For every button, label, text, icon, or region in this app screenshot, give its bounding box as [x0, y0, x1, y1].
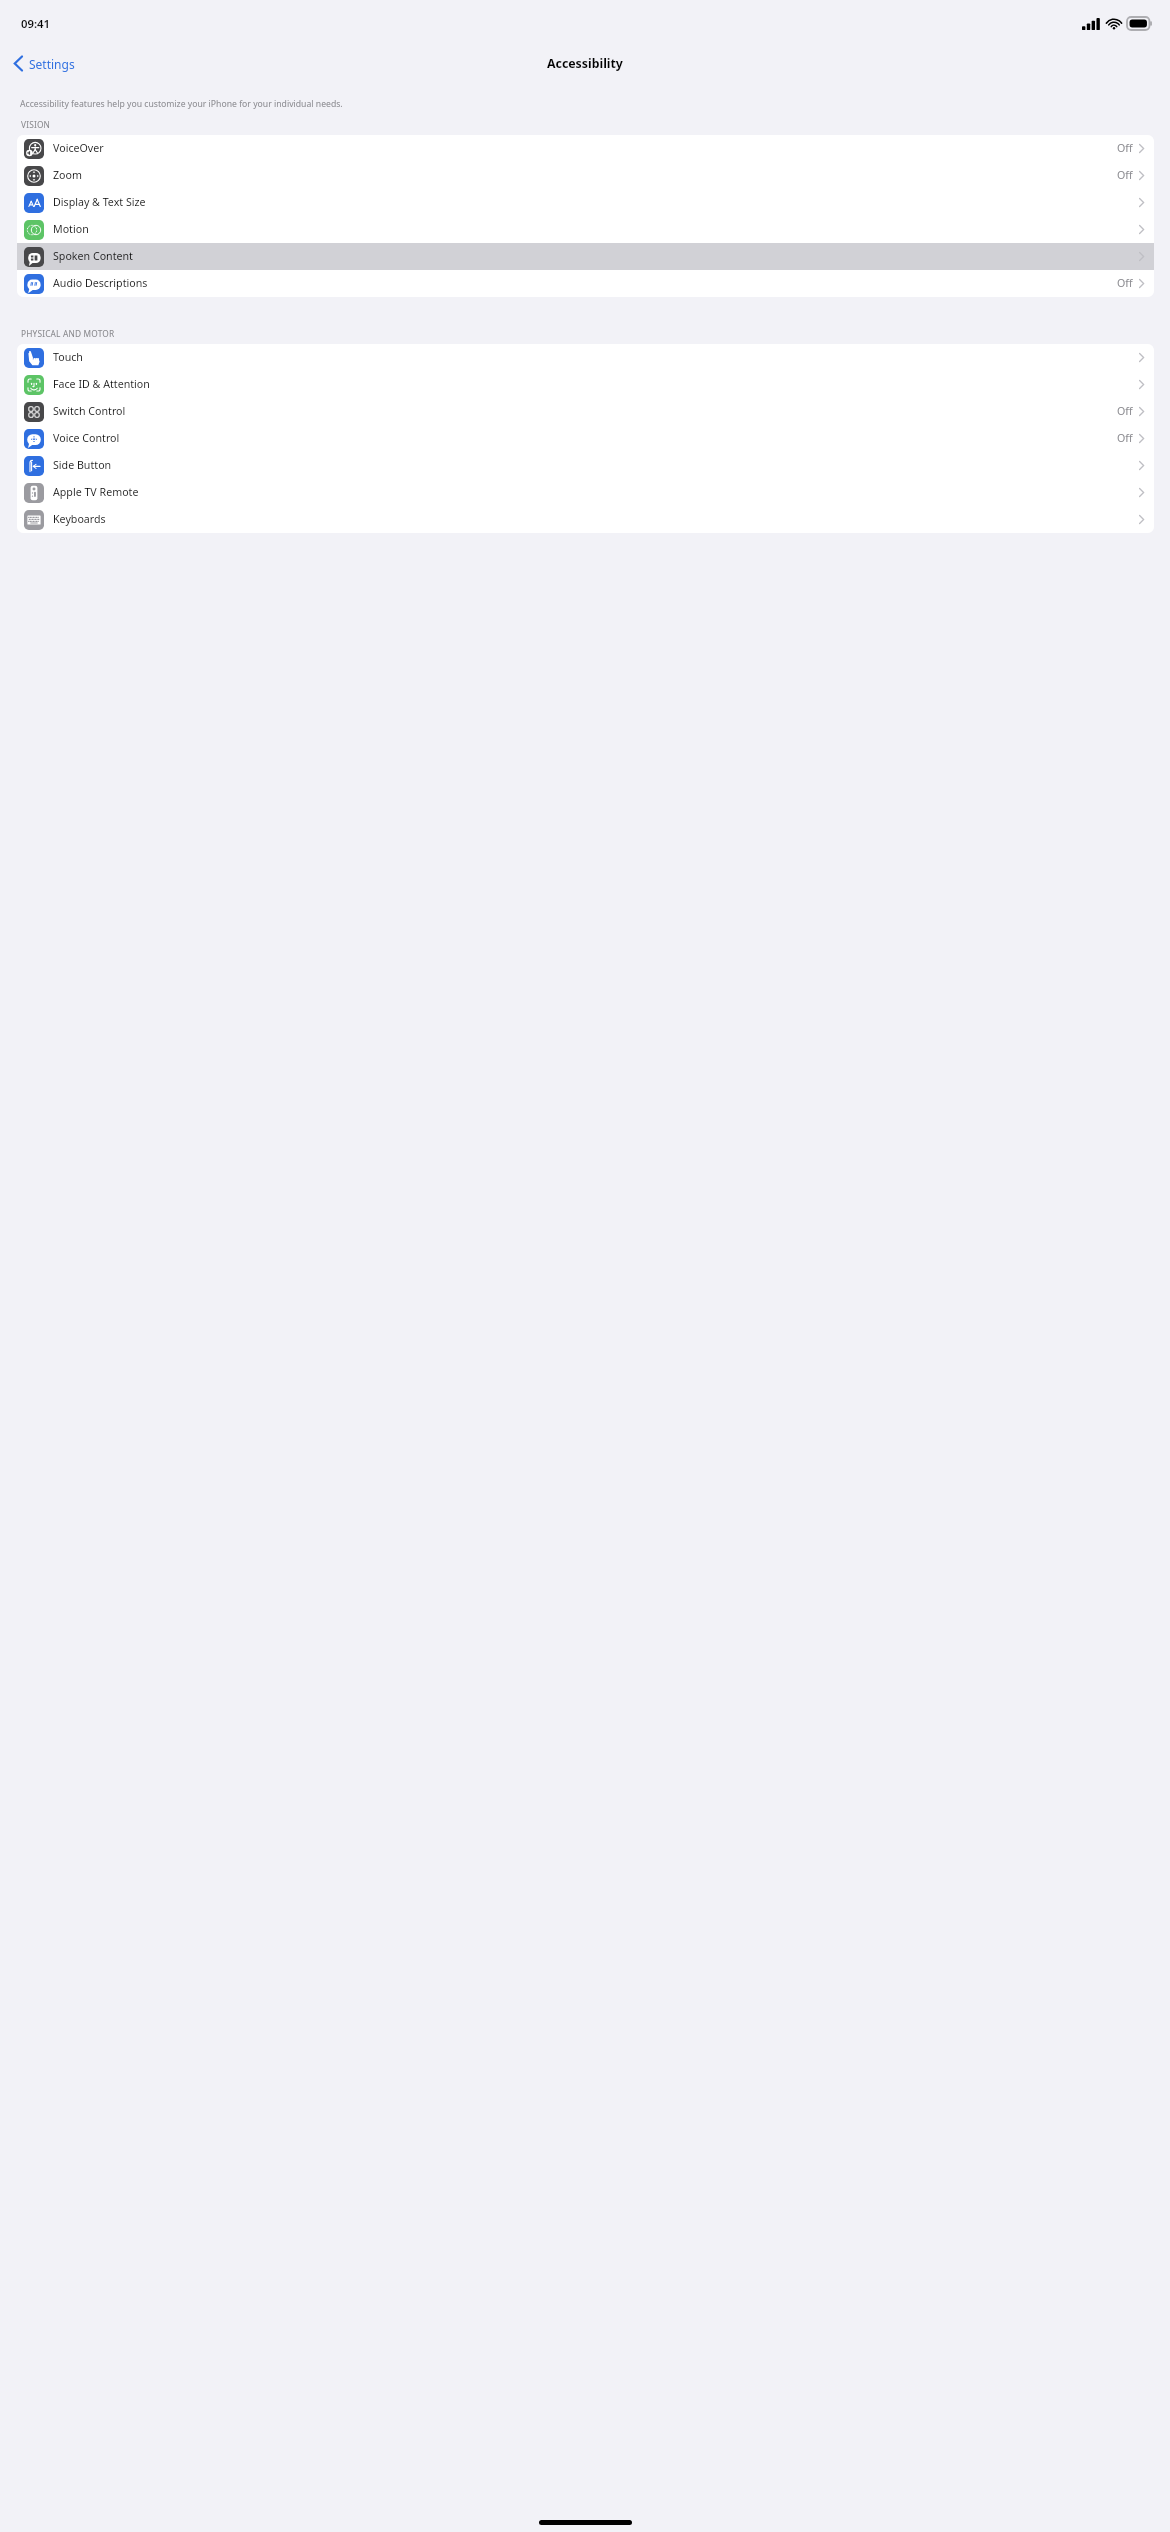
button[interactable]: Display & Text Size — [17, 189, 1154, 216]
staticText: Off — [1117, 276, 1133, 291]
staticText: VISION — [21, 119, 51, 130]
button[interactable]: Motion — [17, 216, 1154, 243]
button[interactable]: Apple TV Remote — [17, 479, 1154, 506]
button[interactable]: Keyboards — [17, 506, 1154, 533]
staticText: 09:41 — [21, 16, 51, 31]
staticText: Keyboards — [53, 512, 106, 527]
staticText: Settings — [29, 56, 75, 72]
staticText: Side Button — [53, 458, 112, 473]
button[interactable]: Spoken Content — [17, 243, 1154, 270]
staticText: Accessibility — [547, 55, 623, 72]
staticText: Zoom — [53, 168, 82, 183]
button[interactable]: Side Button — [17, 452, 1154, 479]
button[interactable]: Settings — [0, 50, 83, 77]
button[interactable]: Face ID & Attention — [17, 371, 1154, 398]
staticText: Off — [1117, 168, 1133, 183]
button[interactable]: Zoom — [17, 162, 1154, 189]
staticText: Spoken Content — [53, 249, 133, 264]
staticText: Off — [1117, 141, 1133, 156]
staticText: Touch — [53, 350, 83, 365]
staticText: Face ID & Attention — [53, 377, 150, 392]
staticText: Off — [1117, 404, 1133, 419]
button[interactable]: Switch Control — [17, 398, 1154, 425]
staticText: Voice Control — [53, 431, 120, 446]
staticText: Motion — [53, 222, 89, 237]
staticText: Audio Descriptions — [53, 276, 148, 291]
button[interactable]: Voice Control — [17, 425, 1154, 452]
staticText: Off — [1117, 431, 1133, 446]
staticText: Apple TV Remote — [53, 485, 139, 500]
staticText: PHYSICAL AND MOTOR — [21, 328, 115, 339]
staticText: Display & Text Size — [53, 195, 146, 210]
staticText: Accessibility features help you customiz… — [20, 98, 343, 110]
button[interactable]: Audio Descriptions — [17, 270, 1154, 297]
staticText: Switch Control — [53, 404, 126, 419]
button[interactable]: Touch — [17, 344, 1154, 371]
button[interactable]: VoiceOver — [17, 135, 1154, 162]
staticText: VoiceOver — [53, 141, 104, 156]
